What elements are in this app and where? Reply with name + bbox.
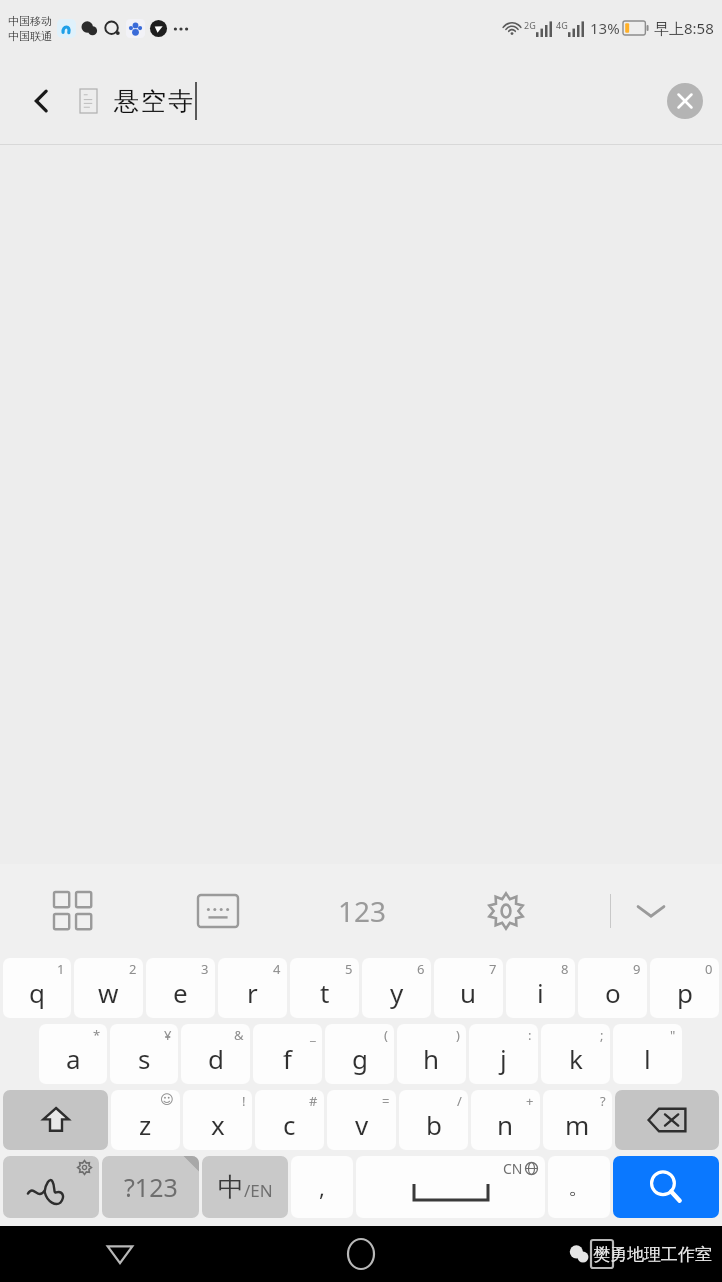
button[interactable]: Backspace [615, 1090, 719, 1150]
staticText: CN [503, 1159, 523, 1178]
staticText: 4 [273, 960, 281, 978]
staticText: ¥ [164, 1026, 172, 1044]
staticText: o [605, 975, 621, 1010]
staticText: x [211, 1107, 225, 1142]
button[interactable]: Home [240, 1226, 481, 1282]
button[interactable]: Hide keyboard [611, 864, 691, 958]
staticText: 2 [129, 960, 137, 978]
button[interactable]: 。 [548, 1156, 610, 1218]
staticText: h [423, 1041, 440, 1076]
staticText: i [537, 975, 544, 1010]
button[interactable]: Clear [660, 76, 710, 126]
staticText: d [208, 1041, 224, 1076]
button[interactable]: 2 [74, 958, 143, 1018]
button[interactable]: Shift [3, 1090, 108, 1150]
staticText: 13% [590, 18, 620, 38]
staticText: 6 [417, 960, 425, 978]
button[interactable]: ☺ [111, 1090, 180, 1150]
staticText: t [320, 975, 330, 1010]
button[interactable]: Space [356, 1156, 545, 1218]
staticText: c [283, 1107, 296, 1142]
staticText: ?123 [124, 1170, 178, 1204]
staticText: 4G [556, 19, 568, 31]
button[interactable]: : [469, 1024, 538, 1084]
staticText: # [309, 1092, 318, 1110]
staticText: ☺ [160, 1092, 174, 1107]
staticText: 早上8:58 [654, 18, 714, 38]
staticText: * [93, 1026, 101, 1044]
staticText: n [497, 1107, 514, 1142]
staticText: 1 [57, 960, 65, 978]
staticText: l [644, 1041, 651, 1076]
button[interactable]: Keyboard layouts [0, 864, 145, 958]
button[interactable]: 5 [290, 958, 359, 1018]
button[interactable]: Search [613, 1156, 719, 1218]
button[interactable]: 123 [290, 864, 434, 958]
staticText: z [139, 1107, 152, 1142]
staticText: 3 [201, 960, 209, 978]
staticText: 0 [705, 960, 713, 978]
staticText: a [66, 1041, 81, 1076]
staticText: 樊勇地理工作室 [593, 1244, 712, 1265]
staticText: 5 [345, 960, 353, 978]
button[interactable]: , [291, 1156, 353, 1218]
staticText: e [173, 975, 188, 1010]
staticText: 9 [633, 960, 641, 978]
button[interactable]: ? [543, 1090, 612, 1150]
button[interactable]: Handwriting input [3, 1156, 99, 1218]
staticText: v [355, 1107, 369, 1142]
staticText: / [457, 1092, 462, 1110]
button[interactable]: ) [397, 1024, 466, 1084]
staticText: 123 [338, 892, 387, 930]
staticText: r [247, 975, 258, 1010]
button[interactable]: * [39, 1024, 107, 1084]
staticText: u [460, 975, 477, 1010]
button[interactable]: + [471, 1090, 540, 1150]
staticText: ! [242, 1092, 246, 1110]
button[interactable]: 1 [3, 958, 71, 1018]
button[interactable]: Recent apps [481, 1226, 722, 1282]
button[interactable]: ?123 [102, 1156, 199, 1218]
staticText: /EN [244, 1179, 273, 1202]
button[interactable]: 3 [146, 958, 215, 1018]
staticText: & [234, 1026, 244, 1044]
button[interactable]: Settings [434, 864, 578, 958]
staticText: _ [310, 1026, 316, 1044]
staticText: q [29, 975, 45, 1010]
button[interactable]: 6 [362, 958, 431, 1018]
button[interactable]: = [327, 1090, 396, 1150]
staticText: 2G [524, 19, 536, 31]
button[interactable]: Back [0, 1226, 240, 1282]
button[interactable]: Back [14, 73, 70, 129]
button[interactable]: ( [325, 1024, 394, 1084]
button[interactable]: & [181, 1024, 250, 1084]
button[interactable]: ; [541, 1024, 610, 1084]
button[interactable]: _ [253, 1024, 322, 1084]
staticText: y [390, 975, 404, 1010]
button[interactable]: 中 [202, 1156, 288, 1218]
staticText: 中国移动 [8, 14, 52, 28]
staticText: ; [600, 1026, 604, 1044]
button[interactable]: ¥ [110, 1024, 178, 1084]
staticText: 悬空寺 [113, 86, 194, 117]
staticText: : [528, 1026, 532, 1044]
button[interactable]: 9 [578, 958, 647, 1018]
button[interactable]: " [613, 1024, 682, 1084]
staticText: 中国联通 [8, 29, 52, 43]
button[interactable]: Keyboard [145, 864, 290, 958]
staticText: , [319, 1172, 325, 1202]
button[interactable]: / [399, 1090, 468, 1150]
staticText: ( [384, 1026, 388, 1044]
button[interactable]: ! [183, 1090, 252, 1150]
staticText: = [382, 1092, 390, 1110]
button[interactable]: 4 [218, 958, 287, 1018]
button[interactable]: # [255, 1090, 324, 1150]
staticText: ) [456, 1026, 460, 1044]
staticText: s [138, 1041, 151, 1076]
staticText: 。 [568, 1173, 590, 1201]
button[interactable]: 0 [650, 958, 719, 1018]
staticText: p [677, 975, 693, 1010]
staticText: + [526, 1092, 534, 1110]
button[interactable]: 8 [506, 958, 575, 1018]
button[interactable]: 7 [434, 958, 503, 1018]
